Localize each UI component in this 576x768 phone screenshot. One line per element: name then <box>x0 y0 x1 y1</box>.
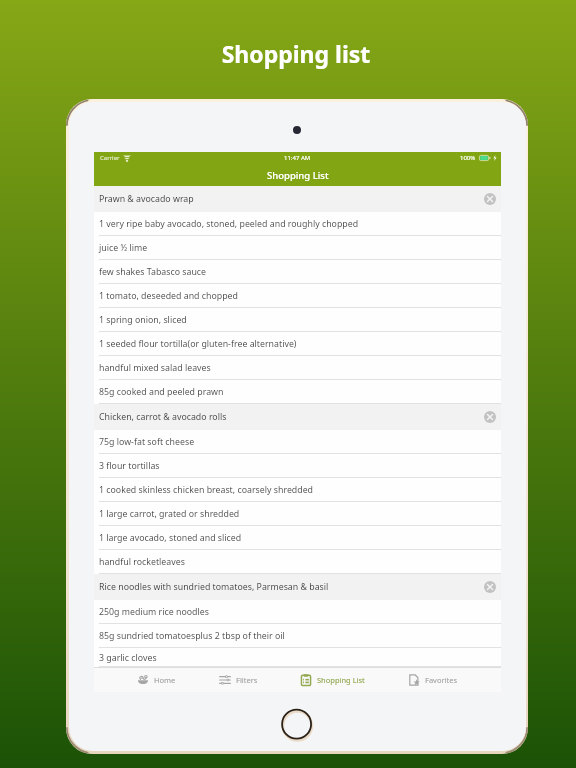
staticText: handful mixed salad leaves <box>99 362 211 374</box>
button[interactable]: Remove recipe <box>484 581 496 593</box>
button[interactable]: 250g medium rice noodles <box>94 600 501 624</box>
button[interactable]: 1 tomato, deseeded and chopped <box>94 284 501 308</box>
staticText: 1 cooked skinless chicken breast, coarse… <box>99 484 314 496</box>
staticText: 1 very ripe baby avocado, stoned, peeled… <box>99 218 359 230</box>
button[interactable]: 85g cooked and peeled prawn <box>94 380 501 404</box>
staticText: 75g low-fat soft cheese <box>99 436 195 448</box>
staticText: Carrier <box>100 154 120 162</box>
staticText: Shopping list <box>8 38 576 69</box>
button[interactable]: 1 large carrot, grated or shredded <box>94 502 501 526</box>
staticText: 11:47 AM <box>284 154 311 162</box>
button[interactable]: 1 seeded flour tortilla(or gluten-free a… <box>94 332 501 356</box>
staticText: 1 large avocado, stoned and sliced <box>99 532 242 544</box>
staticText: 1 seeded flour tortilla(or gluten-free a… <box>99 338 297 350</box>
staticText: 3 flour tortillas <box>99 460 160 472</box>
button[interactable]: 85g sundried tomatoesplus 2 tbsp of thei… <box>94 624 501 648</box>
button[interactable]: few shakes Tabasco sauce <box>94 260 501 284</box>
staticText: Chicken, carrot & avocado rolls <box>99 411 227 423</box>
button[interactable]: juice ½ lime <box>94 236 501 260</box>
staticText: handful rocketleaves <box>99 556 185 568</box>
staticText: 100% <box>460 154 476 162</box>
staticText: few shakes Tabasco sauce <box>99 266 207 278</box>
button[interactable]: 3 flour tortillas <box>94 454 501 478</box>
staticText: 250g medium rice noodles <box>99 606 209 618</box>
button[interactable]: handful rocketleaves <box>94 550 501 574</box>
staticText: Home <box>154 675 176 685</box>
button[interactable]: 1 spring onion, sliced <box>94 308 501 332</box>
staticText: Shopping List <box>267 169 329 182</box>
button[interactable]: Chicken, carrot & avocado rolls <box>94 404 501 430</box>
staticText: Prawn & avocado wrap <box>99 193 194 205</box>
button[interactable]: Filters <box>219 674 258 686</box>
staticText: Favorites <box>425 675 458 685</box>
button[interactable]: Home <box>137 674 176 686</box>
button[interactable]: Remove recipe <box>484 193 496 205</box>
button[interactable]: Remove recipe <box>484 411 496 423</box>
button[interactable]: Home <box>276 704 318 746</box>
staticText: 3 garlic cloves <box>99 652 157 664</box>
button[interactable]: Prawn & avocado wrap <box>94 186 501 212</box>
button[interactable]: handful mixed salad leaves <box>94 356 501 380</box>
button[interactable]: Rice noodles with sundried tomatoes, Par… <box>94 574 501 600</box>
staticText: 85g cooked and peeled prawn <box>99 386 224 398</box>
staticText: Shopping List <box>317 675 365 685</box>
staticText: Rice noodles with sundried tomatoes, Par… <box>99 581 329 593</box>
staticText: 1 large carrot, grated or shredded <box>99 508 240 520</box>
staticText: Filters <box>236 675 258 685</box>
staticText: 85g sundried tomatoesplus 2 tbsp of thei… <box>99 630 285 642</box>
staticText: juice ½ lime <box>99 242 148 254</box>
button[interactable]: 75g low-fat soft cheese <box>94 430 501 454</box>
button[interactable]: 1 cooked skinless chicken breast, coarse… <box>94 478 501 502</box>
button[interactable]: Favorites <box>408 674 458 686</box>
button[interactable]: 1 very ripe baby avocado, stoned, peeled… <box>94 212 501 236</box>
button[interactable]: 1 large avocado, stoned and sliced <box>94 526 501 550</box>
button[interactable]: 3 garlic cloves <box>94 648 501 667</box>
staticText: 1 spring onion, sliced <box>99 314 187 326</box>
button[interactable]: Shopping List <box>300 674 365 686</box>
staticText: 1 tomato, deseeded and chopped <box>99 290 238 302</box>
